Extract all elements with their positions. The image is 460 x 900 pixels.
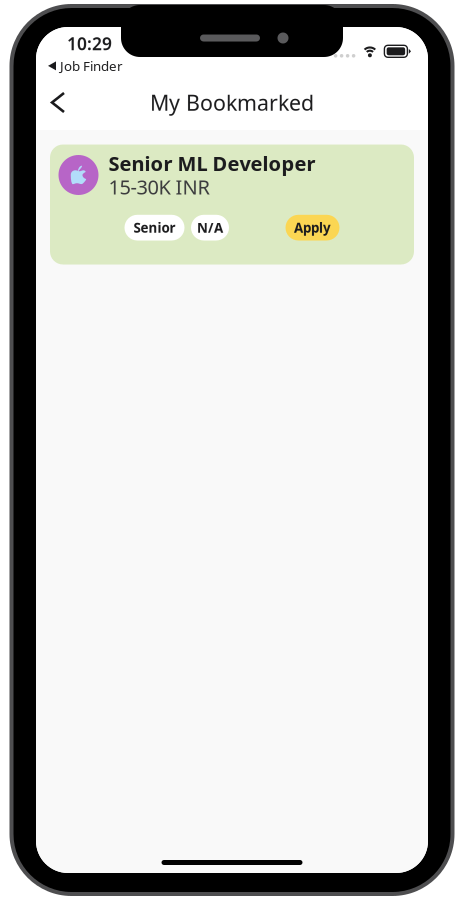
staticText: 15-30K INR [108,174,209,200]
staticText: 10:29 [67,32,112,55]
staticText: My Bookmarked [150,88,314,117]
button[interactable]: N/A [191,215,229,240]
staticText: Senior ML Developer [108,150,315,177]
button[interactable]: Back [37,80,79,125]
button[interactable]: Senior ML Developer [50,144,414,264]
staticText: Apply [294,219,331,236]
button[interactable]: Apply [285,215,339,240]
staticText: Senior [133,219,175,236]
staticText: N/A [197,219,223,236]
button[interactable]: Senior [124,215,184,240]
staticText: Job Finder [60,57,123,75]
